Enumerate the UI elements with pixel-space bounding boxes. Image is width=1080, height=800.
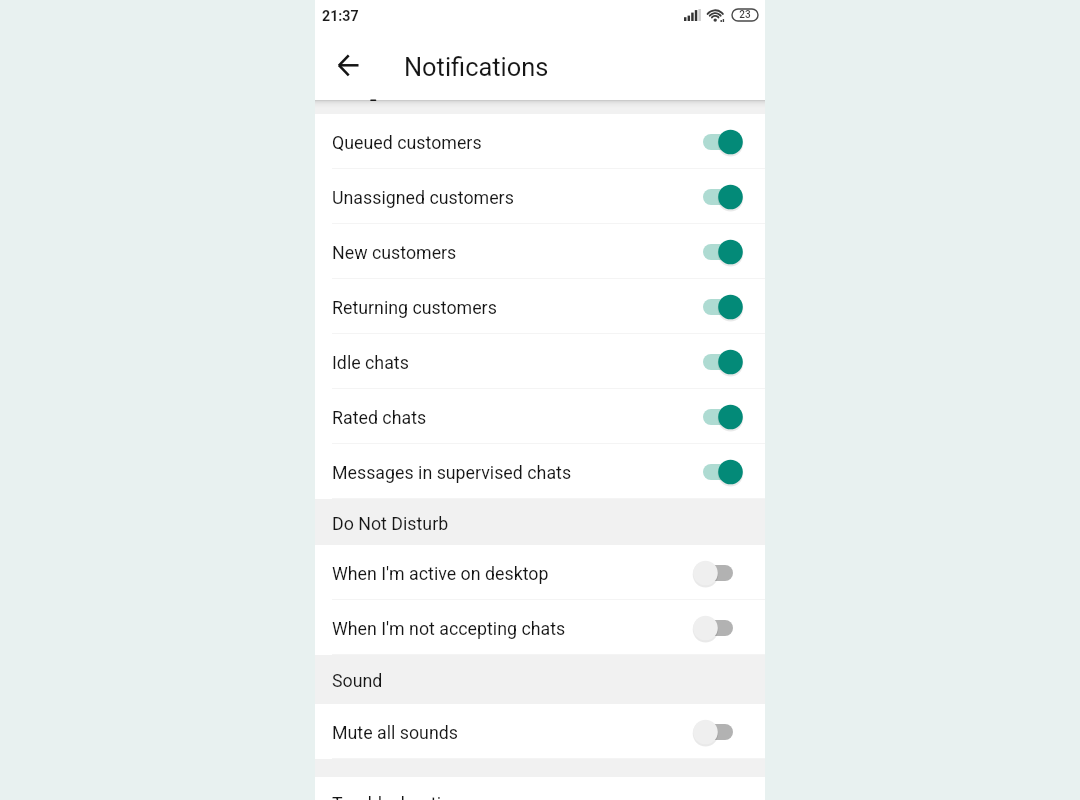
- button[interactable]: Returning customers: [315, 279, 765, 334]
- button[interactable]: Back: [335, 52, 361, 78]
- staticText: Messages in supervised chats: [332, 462, 572, 483]
- staticText: Do Not Disturb: [332, 513, 449, 534]
- button[interactable]: Rated chats: [315, 389, 765, 444]
- button[interactable]: Messages in supervised chats: [315, 444, 765, 499]
- staticText: Returning customers: [332, 297, 497, 318]
- staticText: Mute all sounds: [332, 722, 458, 743]
- staticText: Idle chats: [332, 352, 409, 373]
- button[interactable]: New customers: [315, 224, 765, 279]
- staticText: Sound: [332, 670, 383, 691]
- button[interactable]: Mute all sounds: [315, 704, 765, 759]
- button[interactable]: When I'm active on desktop: [315, 545, 765, 600]
- staticText: Queued customers: [332, 132, 482, 153]
- staticText: New customers: [332, 242, 457, 263]
- button[interactable]: Queued customers: [315, 114, 765, 169]
- staticText: 21:37: [322, 8, 359, 25]
- staticText: Notifications: [404, 52, 549, 82]
- button[interactable]: Idle chats: [315, 334, 765, 389]
- staticText: Rated chats: [332, 407, 427, 428]
- staticText: 23: [739, 9, 751, 21]
- staticText: Unassigned customers: [332, 187, 514, 208]
- button[interactable]: When I'm not accepting chats: [315, 600, 765, 655]
- staticText: When I'm not accepting chats: [332, 618, 566, 639]
- button[interactable]: Unassigned customers: [315, 169, 765, 224]
- staticText: Troubleshooting: [332, 793, 461, 800]
- staticText: When I'm active on desktop: [332, 563, 549, 584]
